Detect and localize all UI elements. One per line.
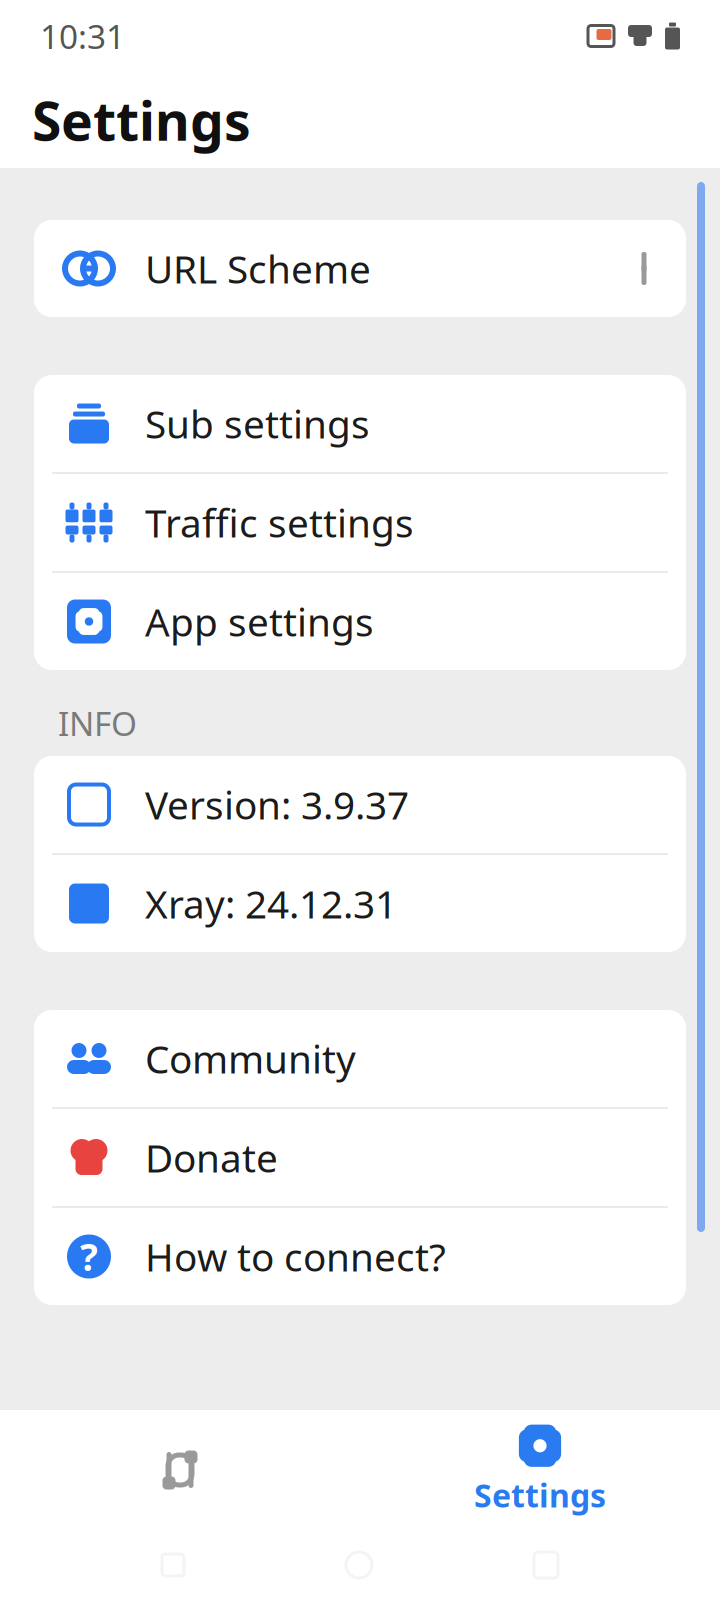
button[interactable]: Community bbox=[34, 1010, 686, 1107]
staticText: Traffic settings bbox=[145, 497, 414, 548]
staticText: Community bbox=[145, 1033, 356, 1084]
staticText: Donate bbox=[145, 1132, 278, 1183]
button[interactable]: Settings bbox=[360, 1410, 720, 1530]
staticText: Xray: 24.12.31 bbox=[145, 878, 397, 929]
button[interactable]: URL Scheme bbox=[34, 220, 686, 317]
staticText: Settings bbox=[474, 1474, 606, 1516]
button[interactable]: Sub settings bbox=[34, 375, 686, 472]
staticText: App settings bbox=[145, 596, 374, 647]
button[interactable]: Donate bbox=[34, 1109, 686, 1206]
button[interactable]: Version: 3.9.37 bbox=[34, 756, 686, 853]
staticText: How to connect? bbox=[145, 1231, 446, 1282]
button[interactable]: ? bbox=[34, 1208, 686, 1305]
staticText: Version: 3.9.37 bbox=[145, 779, 409, 830]
staticText: Settings bbox=[32, 85, 251, 155]
button[interactable]: Xray: 24.12.31 bbox=[34, 855, 686, 952]
staticText: 10:31 bbox=[40, 14, 125, 58]
button[interactable]: Traffic settings bbox=[34, 474, 686, 571]
staticText: URL Scheme bbox=[145, 243, 371, 294]
button[interactable]: Connection bbox=[0, 1410, 360, 1530]
staticText: INFO bbox=[58, 701, 137, 745]
staticText: Sub settings bbox=[145, 398, 370, 449]
staticText: ? bbox=[80, 1232, 98, 1281]
button[interactable]: App settings bbox=[34, 573, 686, 670]
